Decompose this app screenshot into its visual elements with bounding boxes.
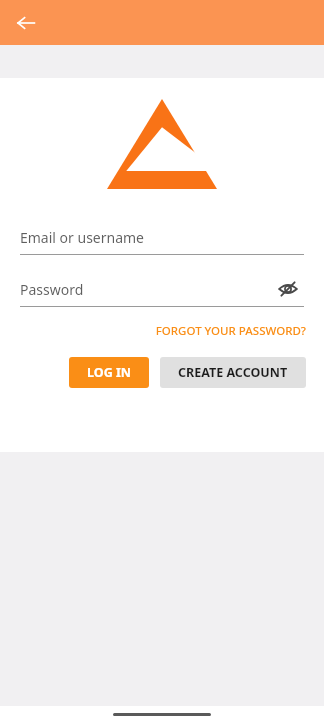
- button[interactable]: Show password: [272, 273, 304, 305]
- button[interactable]: Email or username: [20, 219, 304, 255]
- staticText: Email or username: [20, 228, 145, 247]
- staticText: Password: [20, 280, 84, 299]
- staticText: LOG IN: [87, 364, 131, 381]
- staticText: FORGOT YOUR PASSWORD?: [155, 323, 306, 339]
- button[interactable]: FORGOT YOUR PASSWORD?: [153, 321, 308, 341]
- staticText: CREATE ACCOUNT: [178, 364, 288, 381]
- button[interactable]: LOG IN: [69, 357, 149, 388]
- button[interactable]: [20, 271, 304, 307]
- button[interactable]: Back: [6, 3, 46, 43]
- button[interactable]: CREATE ACCOUNT: [160, 357, 306, 388]
